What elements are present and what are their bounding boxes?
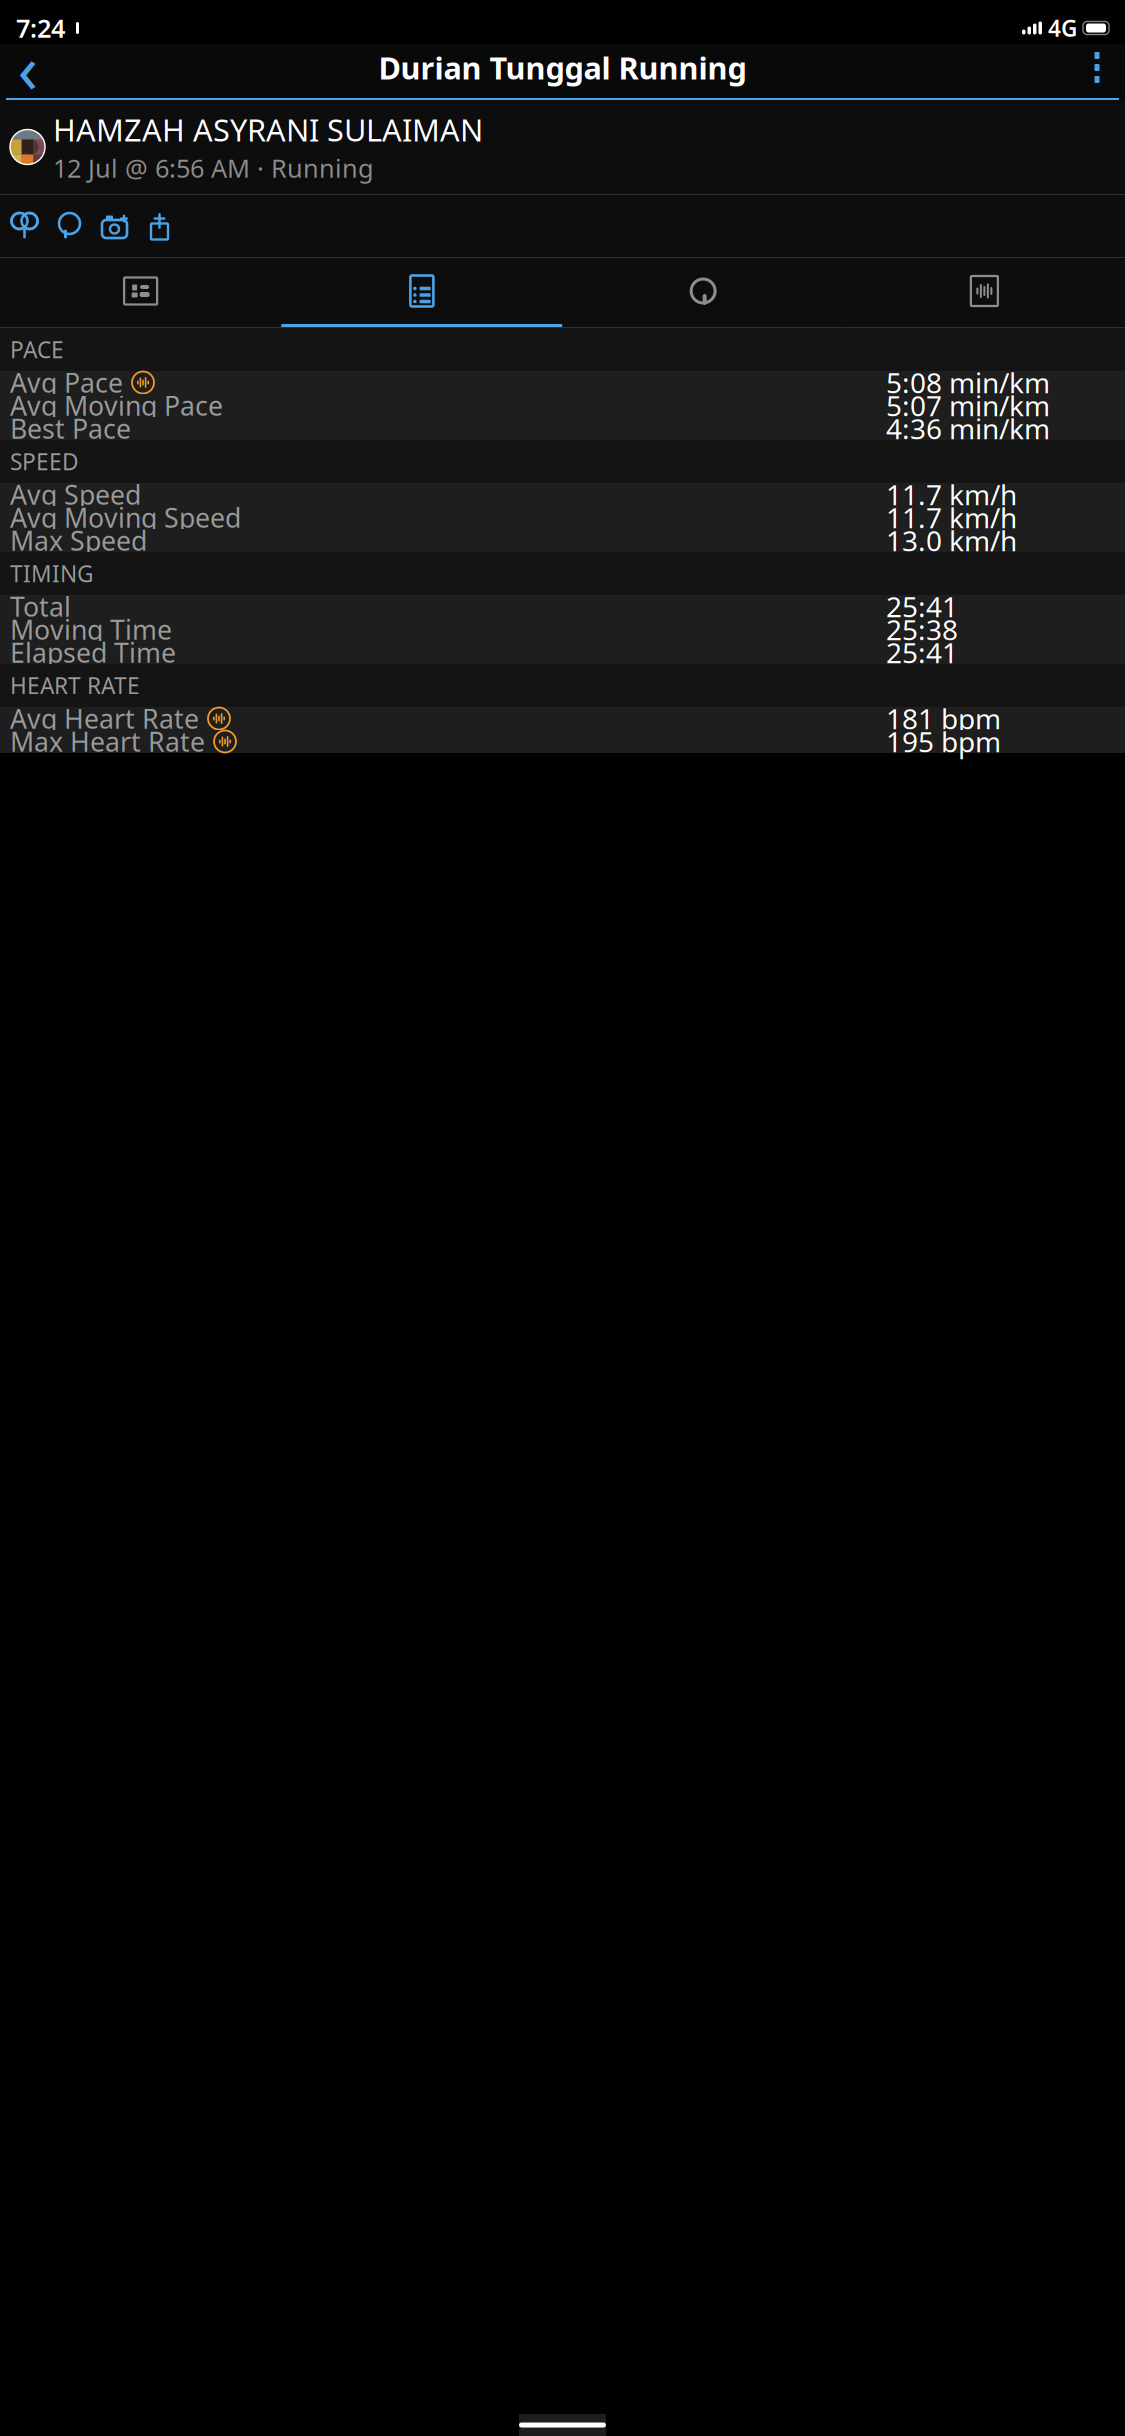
- staticText: Avg Pace: [10, 365, 123, 400]
- staticText: Best Pace: [10, 411, 131, 446]
- button[interactable]: More options: [1075, 44, 1119, 91]
- staticText: 11.7 km/h: [886, 499, 1017, 536]
- staticText: Max Speed: [10, 523, 147, 558]
- staticText: Total: [10, 589, 71, 624]
- button[interactable]: Moving Time: [0, 618, 1125, 641]
- staticText: HAMZAH ASYRANI SULAIMAN: [53, 109, 483, 150]
- staticText: Avg Moving Speed: [10, 500, 241, 535]
- staticText: SPEED: [10, 446, 79, 476]
- staticText: 25:41: [886, 634, 958, 671]
- staticText: Avg Speed: [10, 477, 141, 512]
- staticText: 195 bpm: [886, 723, 1001, 760]
- button[interactable]: Total: [0, 595, 1125, 618]
- staticText: 11.7 km/h: [886, 476, 1017, 513]
- button[interactable]: Details: [281, 258, 562, 324]
- button[interactable]: Back: [6, 44, 50, 91]
- button[interactable]: Comment: [47, 195, 92, 257]
- button[interactable]: HAMZAH ASYRANI SULAIMAN: [0, 100, 1125, 194]
- staticText: TIMING: [10, 558, 94, 588]
- staticText: Moving Time: [10, 612, 172, 647]
- staticText: 181 bpm: [886, 700, 1001, 737]
- button[interactable]: Laps: [562, 258, 844, 324]
- staticText: 5:07 min/km: [886, 387, 1050, 424]
- staticText: Max Heart Rate: [10, 724, 205, 759]
- button[interactable]: Best Pace: [0, 417, 1125, 440]
- button[interactable]: Max Speed: [0, 529, 1125, 552]
- staticText: PACE: [10, 334, 64, 364]
- staticText: Elapsed Time: [10, 635, 176, 670]
- staticText: 4:36 min/km: [886, 410, 1050, 447]
- button[interactable]: Add photo: [92, 195, 137, 257]
- button[interactable]: Avg Moving Pace: [0, 394, 1125, 417]
- staticText: Avg Moving Pace: [10, 388, 223, 423]
- button[interactable]: Max Heart Rate: [0, 730, 1125, 753]
- staticText: Durian Tunggal Running: [378, 47, 746, 88]
- staticText: 5:08 min/km: [886, 364, 1050, 401]
- button[interactable]: Avg Moving Speed: [0, 506, 1125, 529]
- button[interactable]: Avg Speed: [0, 483, 1125, 506]
- staticText: 4G: [1048, 13, 1077, 43]
- staticText: HEART RATE: [10, 670, 140, 700]
- button[interactable]: Elapsed Time: [0, 641, 1125, 664]
- button[interactable]: Like: [2, 195, 47, 257]
- button[interactable]: Avg Pace: [0, 371, 1125, 394]
- staticText: 25:38: [886, 611, 958, 648]
- button[interactable]: Map: [0, 258, 281, 324]
- staticText: ‹: [17, 23, 38, 112]
- staticText: 12 Jul @ 6:56 AM · Running: [53, 151, 374, 185]
- staticText: 7:24: [16, 11, 65, 45]
- staticText: 25:41: [886, 588, 958, 625]
- button[interactable]: Share: [137, 195, 182, 257]
- button[interactable]: Avg Heart Rate: [0, 707, 1125, 730]
- button[interactable]: Charts: [844, 258, 1125, 324]
- staticText: 13.0 km/h: [886, 522, 1017, 559]
- staticText: Avg Heart Rate: [10, 701, 199, 736]
